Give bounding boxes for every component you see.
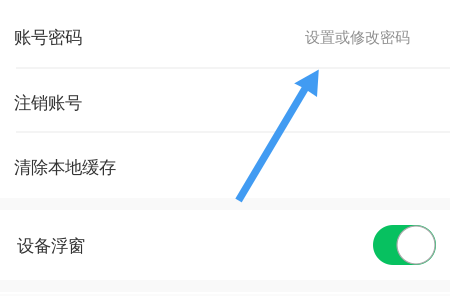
staticText: 注销账号 xyxy=(14,92,82,114)
button[interactable]: 注销账号 xyxy=(0,69,450,133)
staticText: 账号密码 xyxy=(14,27,82,48)
button[interactable]: 设备浮窗开关 xyxy=(373,225,436,265)
staticText: 设置或修改密码 xyxy=(305,28,410,47)
staticText: 清除本地缓存 xyxy=(14,157,116,178)
button[interactable]: 设备浮窗 xyxy=(0,210,450,280)
button[interactable]: 账号密码 xyxy=(0,0,450,69)
button[interactable]: 清除本地缓存 xyxy=(0,133,450,198)
staticText: 设备浮窗 xyxy=(17,235,85,257)
